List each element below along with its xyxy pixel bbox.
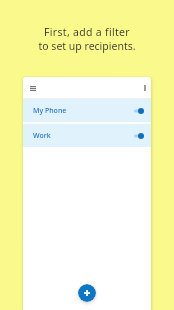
button[interactable]: Work [23,124,151,147]
staticText: First, add a filter [44,25,130,39]
button[interactable]: Add filter [78,284,96,302]
staticText: Work [33,131,51,141]
button[interactable]: More options [138,81,151,94]
staticText: My Phone [33,106,67,116]
button[interactable]: My Phone [23,99,151,122]
button[interactable]: Open navigation menu [26,81,40,95]
staticText: to set up recipients. [38,39,136,53]
